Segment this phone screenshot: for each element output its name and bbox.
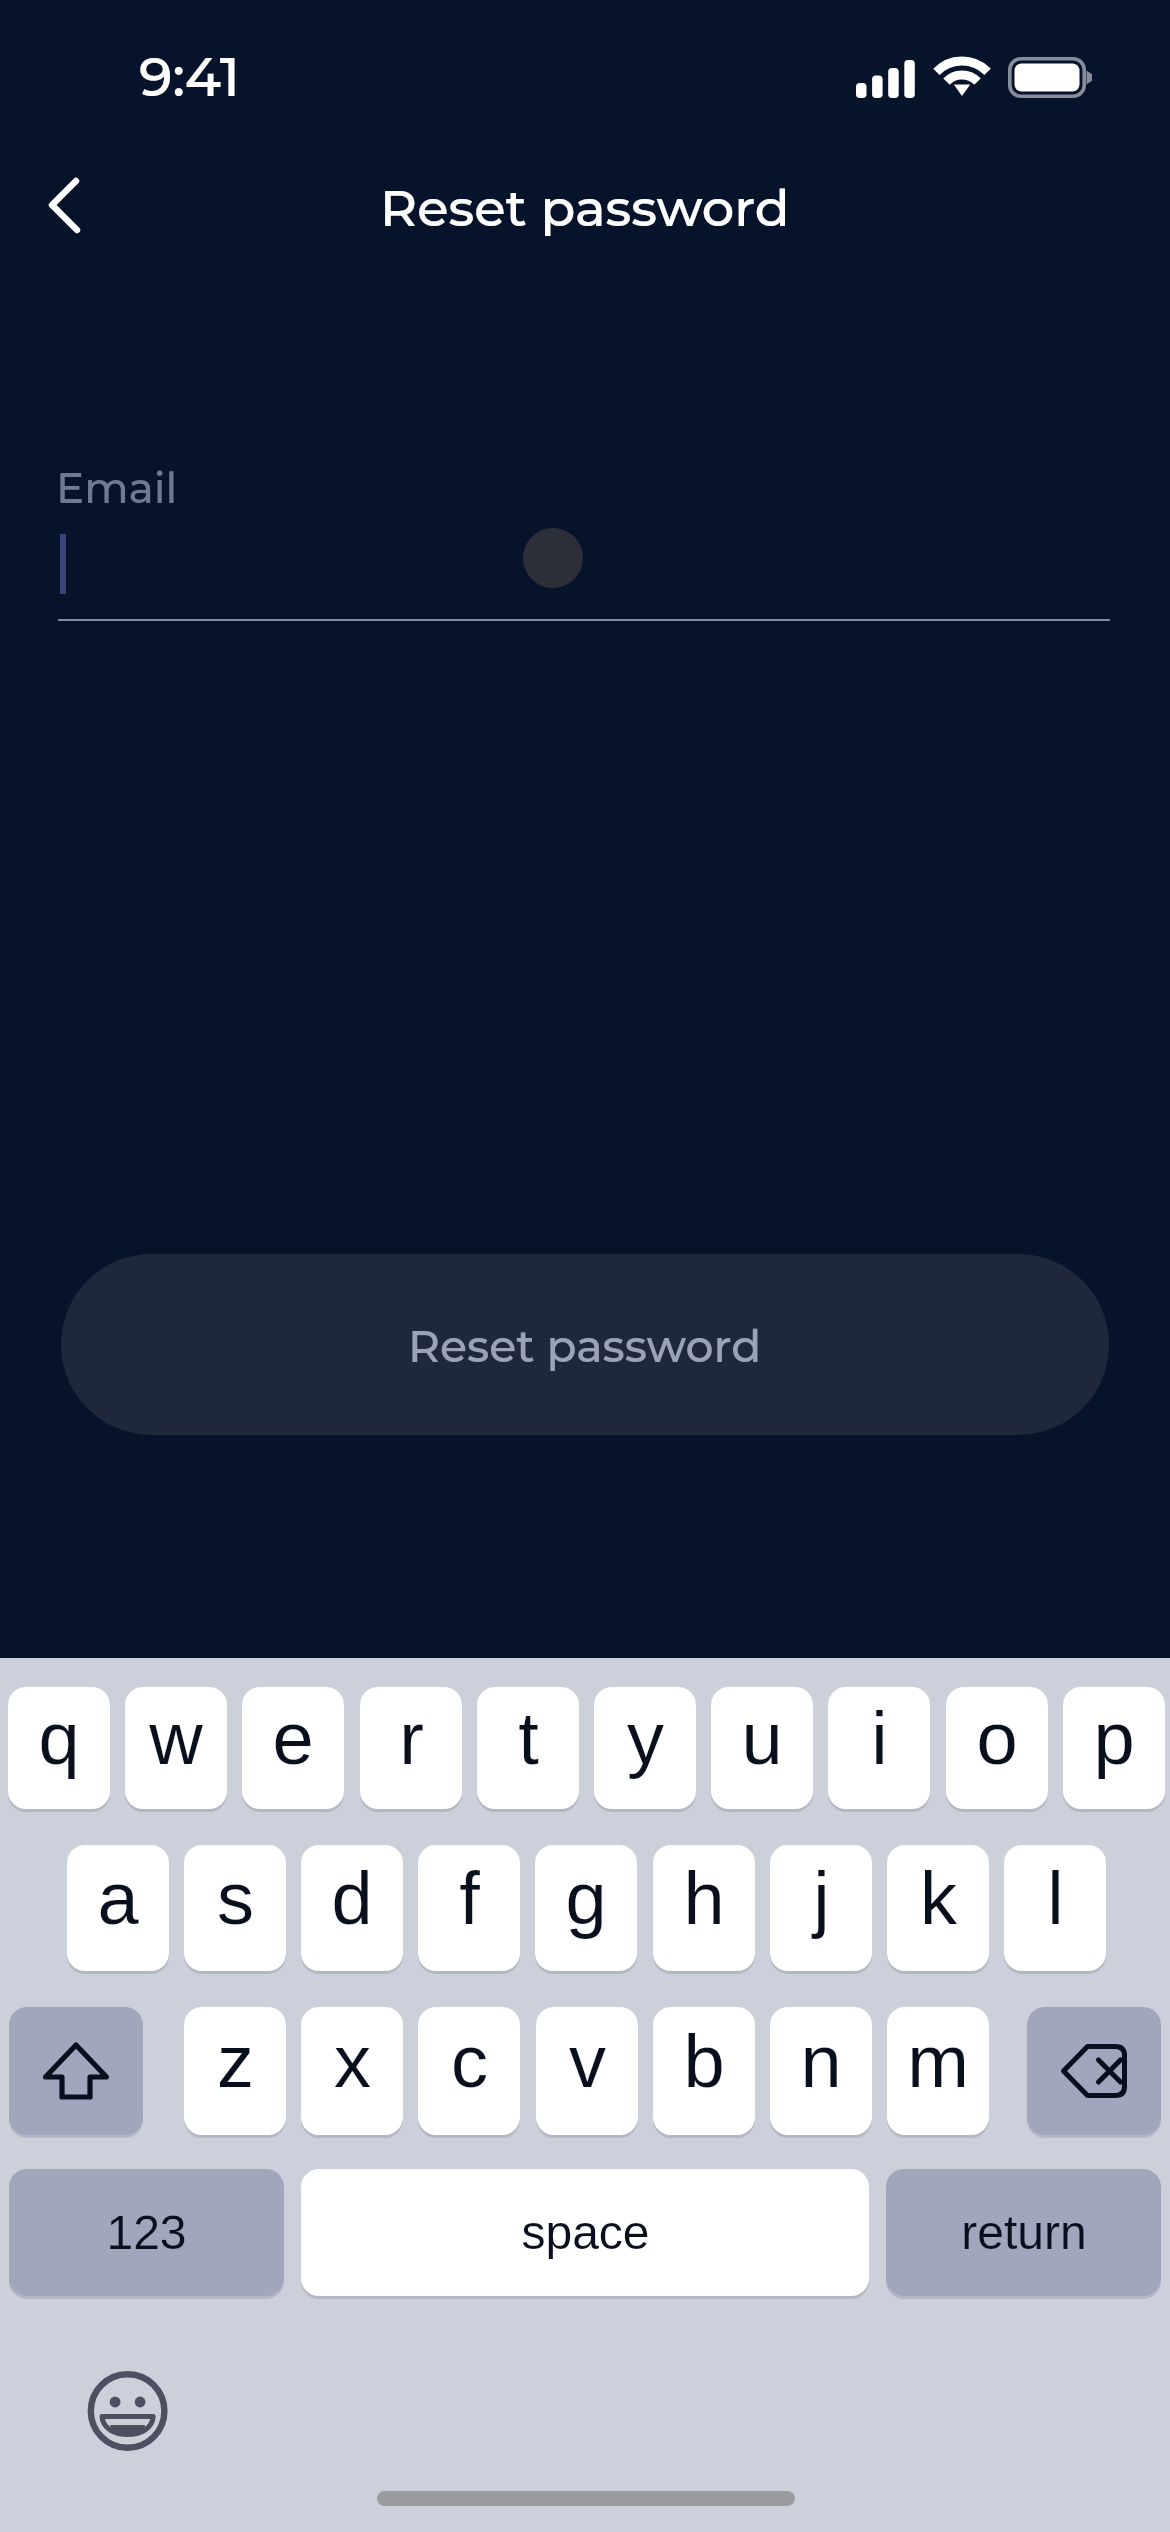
button[interactable]: Shift xyxy=(9,2007,143,2135)
staticText: f xyxy=(459,1857,480,1940)
staticText: v xyxy=(569,2020,606,2103)
staticText: z xyxy=(217,2020,254,2103)
staticText: k xyxy=(920,1857,957,1940)
button[interactable]: space xyxy=(301,2169,869,2296)
staticText: j xyxy=(813,1857,830,1940)
button[interactable]: e xyxy=(242,1687,344,1809)
staticText: p xyxy=(1093,1697,1135,1780)
staticText: r xyxy=(399,1697,424,1780)
staticText: space xyxy=(521,2206,650,2260)
button[interactable]: l xyxy=(1004,1845,1106,1971)
button[interactable]: o xyxy=(946,1687,1048,1809)
button[interactable]: n xyxy=(770,2007,872,2135)
button[interactable]: t xyxy=(477,1687,579,1809)
button[interactable]: r xyxy=(360,1687,462,1809)
staticText: e xyxy=(272,1697,314,1780)
staticText: Reset password xyxy=(408,1319,762,1373)
staticText: t xyxy=(518,1697,539,1780)
button[interactable]: Back xyxy=(15,145,135,265)
button[interactable]: a xyxy=(67,1845,169,1971)
staticText: i xyxy=(871,1697,888,1780)
button[interactable]: return xyxy=(886,2169,1161,2296)
staticText: h xyxy=(683,1857,725,1940)
staticText: x xyxy=(334,2020,371,2103)
button[interactable]: p xyxy=(1063,1687,1165,1809)
button[interactable]: z xyxy=(184,2007,286,2135)
button[interactable]: y xyxy=(594,1687,696,1809)
staticText: y xyxy=(627,1697,664,1780)
staticText: Reset password xyxy=(380,177,790,239)
button[interactable]: h xyxy=(653,1845,755,1971)
button[interactable]: x xyxy=(301,2007,403,2135)
button[interactable]: Emoji keyboard xyxy=(83,2366,173,2456)
button[interactable]: s xyxy=(184,1845,286,1971)
button[interactable]: i xyxy=(828,1687,930,1809)
button[interactable]: k xyxy=(887,1845,989,1971)
button[interactable]: v xyxy=(536,2007,638,2135)
staticText: s xyxy=(217,1857,254,1940)
button[interactable]: j xyxy=(770,1845,872,1971)
staticText: m xyxy=(907,2020,969,2103)
staticText: l xyxy=(1047,1857,1064,1940)
staticText: a xyxy=(97,1857,139,1940)
staticText: n xyxy=(800,2020,842,2103)
button[interactable]: f xyxy=(418,1845,520,1971)
staticText: d xyxy=(331,1857,373,1940)
button[interactable]: u xyxy=(711,1687,813,1809)
button[interactable]: w xyxy=(125,1687,227,1809)
button[interactable]: Backspace xyxy=(1027,2007,1161,2135)
staticText: b xyxy=(683,2020,725,2103)
staticText: o xyxy=(976,1697,1018,1780)
staticText: Email xyxy=(56,462,178,513)
button[interactable]: m xyxy=(887,2007,989,2135)
staticText: 9:41 xyxy=(139,44,240,110)
staticText: return xyxy=(961,2206,1087,2260)
button[interactable]: g xyxy=(535,1845,637,1971)
staticText: c xyxy=(451,2020,488,2103)
button[interactable]: b xyxy=(653,2007,755,2135)
button[interactable]: Reset password xyxy=(61,1254,1109,1435)
button[interactable]: c xyxy=(418,2007,520,2135)
staticText: u xyxy=(741,1697,783,1780)
button[interactable]: Email input field xyxy=(56,455,1110,623)
staticText: q xyxy=(38,1697,80,1780)
staticText: w xyxy=(149,1697,203,1780)
button[interactable]: q xyxy=(8,1687,110,1809)
staticText: 123 xyxy=(106,2206,187,2260)
staticText: g xyxy=(565,1857,607,1940)
button[interactable]: d xyxy=(301,1845,403,1971)
button[interactable]: 123 xyxy=(9,2169,284,2296)
